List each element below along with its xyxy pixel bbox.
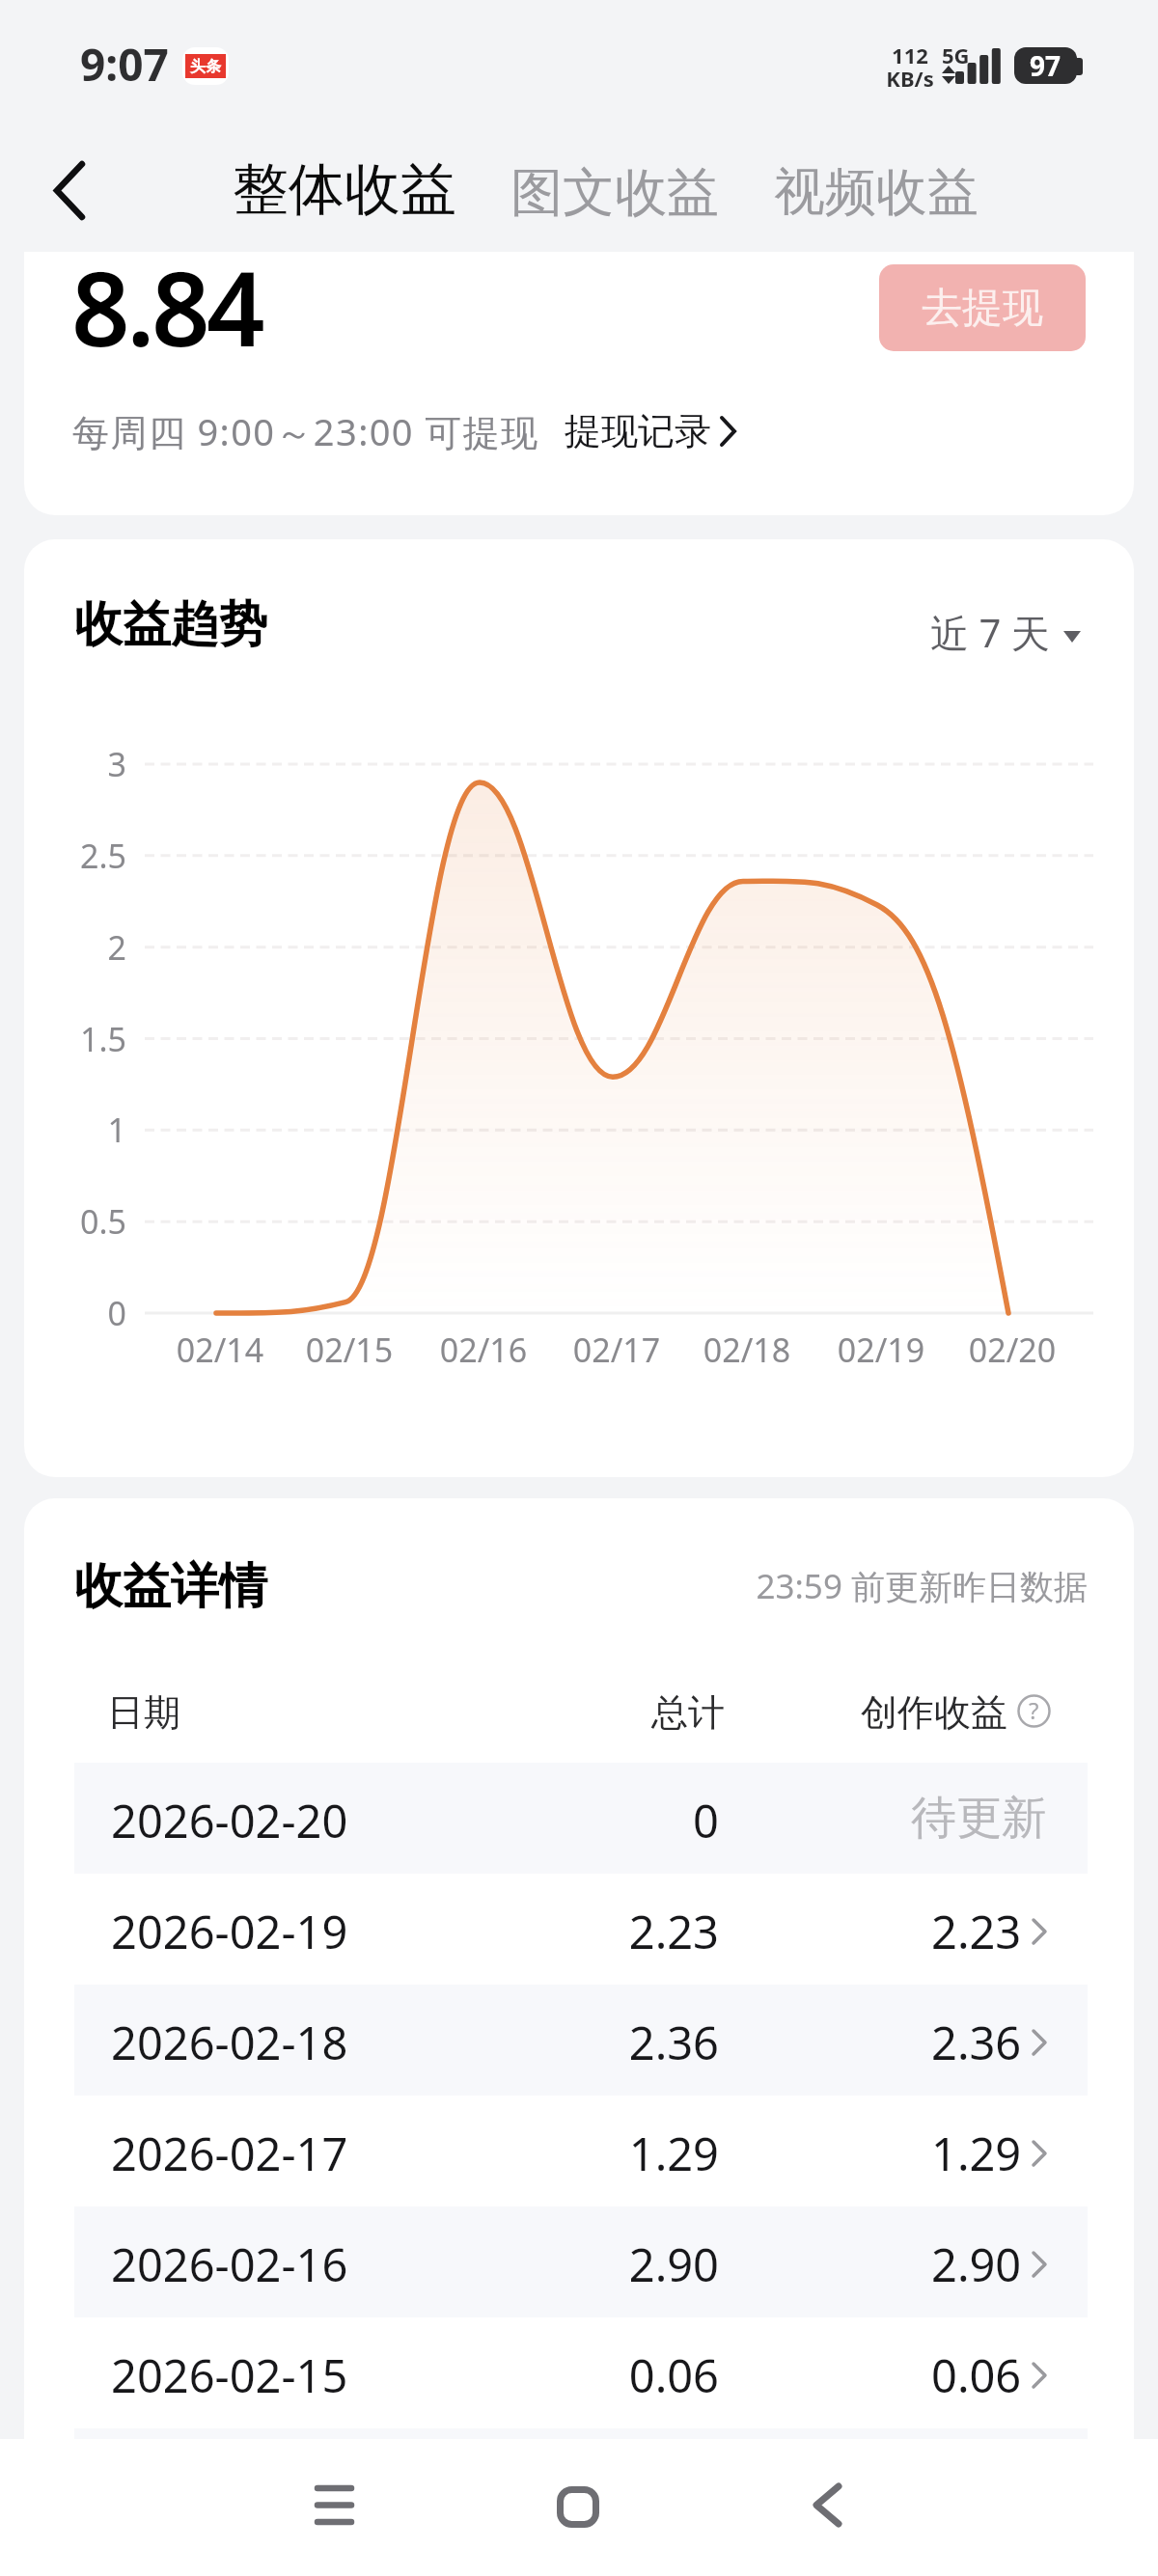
staticText: 02/19: [813, 1328, 949, 1372]
button[interactable]: 去提现: [879, 264, 1086, 351]
staticText: 2026-02-15: [111, 2344, 348, 2406]
staticText: 02/16: [416, 1328, 551, 1372]
staticText: 3: [24, 742, 126, 786]
staticText: 收益趋势: [74, 594, 267, 655]
staticText: 提现记录: [565, 408, 711, 454]
button[interactable]: Recents: [275, 2439, 391, 2576]
staticText: 0.5: [24, 1199, 126, 1244]
staticText: 02/17: [549, 1328, 684, 1372]
button[interactable]: 近 7 天: [930, 606, 1081, 659]
staticText: 2026-02-18: [111, 2012, 348, 2073]
staticText: 02/14: [152, 1328, 288, 1372]
staticText: 0: [24, 1291, 126, 1335]
staticText: 2.23: [931, 1901, 1022, 1962]
staticText: 9:07: [80, 34, 169, 95]
staticText: 头条: [190, 57, 221, 76]
staticText: 1: [24, 1108, 126, 1152]
button[interactable]: 图文收益: [510, 160, 719, 226]
button[interactable]: 2026-02-19: [74, 1874, 1088, 1985]
button[interactable]: Help about creation earnings: [1017, 1694, 1051, 1728]
staticText: KB/s: [876, 64, 944, 93]
staticText: 视频收益: [774, 160, 979, 225]
button[interactable]: 2026-02-16: [74, 2206, 1088, 2317]
staticText: 2026-02-19: [111, 1901, 348, 1962]
staticText: 02/15: [282, 1328, 417, 1372]
staticText: 2.5: [24, 834, 126, 878]
button[interactable]: Back: [767, 2439, 883, 2576]
staticText: 112: [876, 41, 944, 69]
staticText: 02/20: [945, 1328, 1080, 1372]
staticText: 整体收益: [233, 154, 456, 225]
staticText: 1.5: [24, 1017, 126, 1061]
staticText: 2026-02-20: [111, 1790, 348, 1851]
button[interactable]: Back: [28, 149, 111, 232]
staticText: 每周四 9:00～23:00 可提现: [72, 406, 539, 456]
staticText: 0.06: [931, 2344, 1022, 2406]
staticText: 1.29: [540, 2123, 719, 2184]
staticText: 0.06: [540, 2344, 719, 2406]
staticText: 2026-02-16: [111, 2233, 348, 2295]
button[interactable]: 2026-02-15: [74, 2317, 1088, 2428]
button[interactable]: 视频收益: [774, 160, 979, 225]
staticText: 待更新: [911, 1790, 1047, 1847]
staticText: 8.84: [71, 252, 262, 376]
staticText: 0: [540, 1790, 719, 1851]
staticText: 2.36: [931, 2012, 1022, 2073]
staticText: 2026-02-17: [111, 2123, 348, 2184]
staticText: 1.29: [931, 2123, 1022, 2184]
staticText: 2.36: [540, 2012, 719, 2073]
staticText: 2.90: [540, 2233, 719, 2295]
staticText: 近 7 天: [930, 606, 1050, 659]
staticText: 图文收益: [510, 160, 719, 226]
staticText: 收益详情: [74, 1556, 267, 1617]
staticText: 5G: [942, 41, 970, 69]
staticText: 02/18: [679, 1328, 814, 1372]
staticText: 23:59 前更新昨日数据: [675, 1563, 1088, 1609]
button[interactable]: 2026-02-17: [74, 2096, 1088, 2206]
staticText: 去提现: [922, 283, 1043, 334]
staticText: 2.23: [540, 1901, 719, 1962]
staticText: 创作收益: [861, 1689, 1007, 1736]
staticText: 总计: [540, 1689, 725, 1736]
button[interactable]: 2026-02-20: [74, 1763, 1088, 1874]
button[interactable]: 2026-02-18: [74, 1985, 1088, 2096]
staticText: 2.90: [931, 2233, 1022, 2295]
staticText: ?: [1029, 1694, 1039, 1726]
button[interactable]: 提现记录: [565, 408, 737, 454]
staticText: 日期: [107, 1689, 180, 1736]
button[interactable]: Home: [519, 2439, 635, 2576]
staticText: 2: [24, 925, 126, 970]
staticText: 97: [1030, 47, 1061, 84]
button[interactable]: 整体收益: [233, 154, 456, 225]
